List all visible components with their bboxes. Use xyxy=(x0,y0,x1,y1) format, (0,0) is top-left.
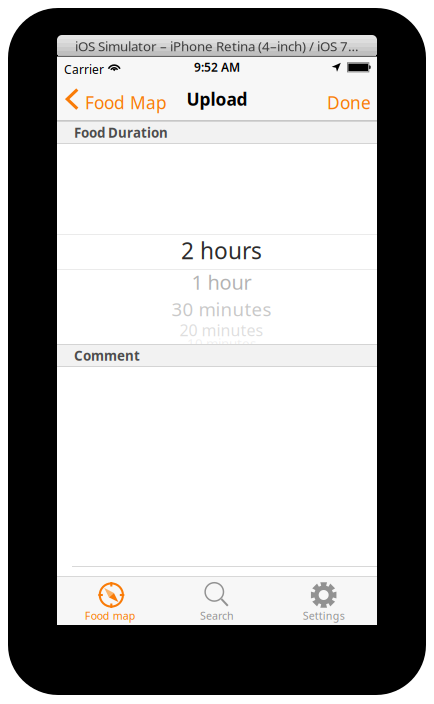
staticText: 20 minutes xyxy=(179,319,263,341)
staticText: iOS Simulator – iPhone Retina (4–inch) /… xyxy=(75,37,359,55)
staticText: Carrier xyxy=(64,61,104,77)
staticText: Search xyxy=(200,608,234,623)
staticText: Comment xyxy=(74,347,140,364)
staticText: 30 minutes xyxy=(171,297,271,321)
staticText: 2 hours xyxy=(181,235,262,265)
button[interactable]: Done xyxy=(315,77,377,121)
staticText: Settings xyxy=(303,608,345,623)
button[interactable]: Food map xyxy=(57,576,164,625)
staticText: 1 hour xyxy=(191,269,251,295)
staticText: 10 minutes xyxy=(187,334,256,352)
button[interactable]: Settings xyxy=(270,576,377,625)
button[interactable]: Search xyxy=(164,576,270,625)
staticText: Upload xyxy=(186,87,247,110)
staticText: Food Map xyxy=(85,91,167,114)
button[interactable]: Food Map xyxy=(57,77,173,121)
staticText: Food Duration xyxy=(74,124,168,141)
staticText: Food map xyxy=(85,608,136,623)
staticText: Done xyxy=(327,91,371,114)
staticText: 9:52 AM xyxy=(194,59,240,75)
